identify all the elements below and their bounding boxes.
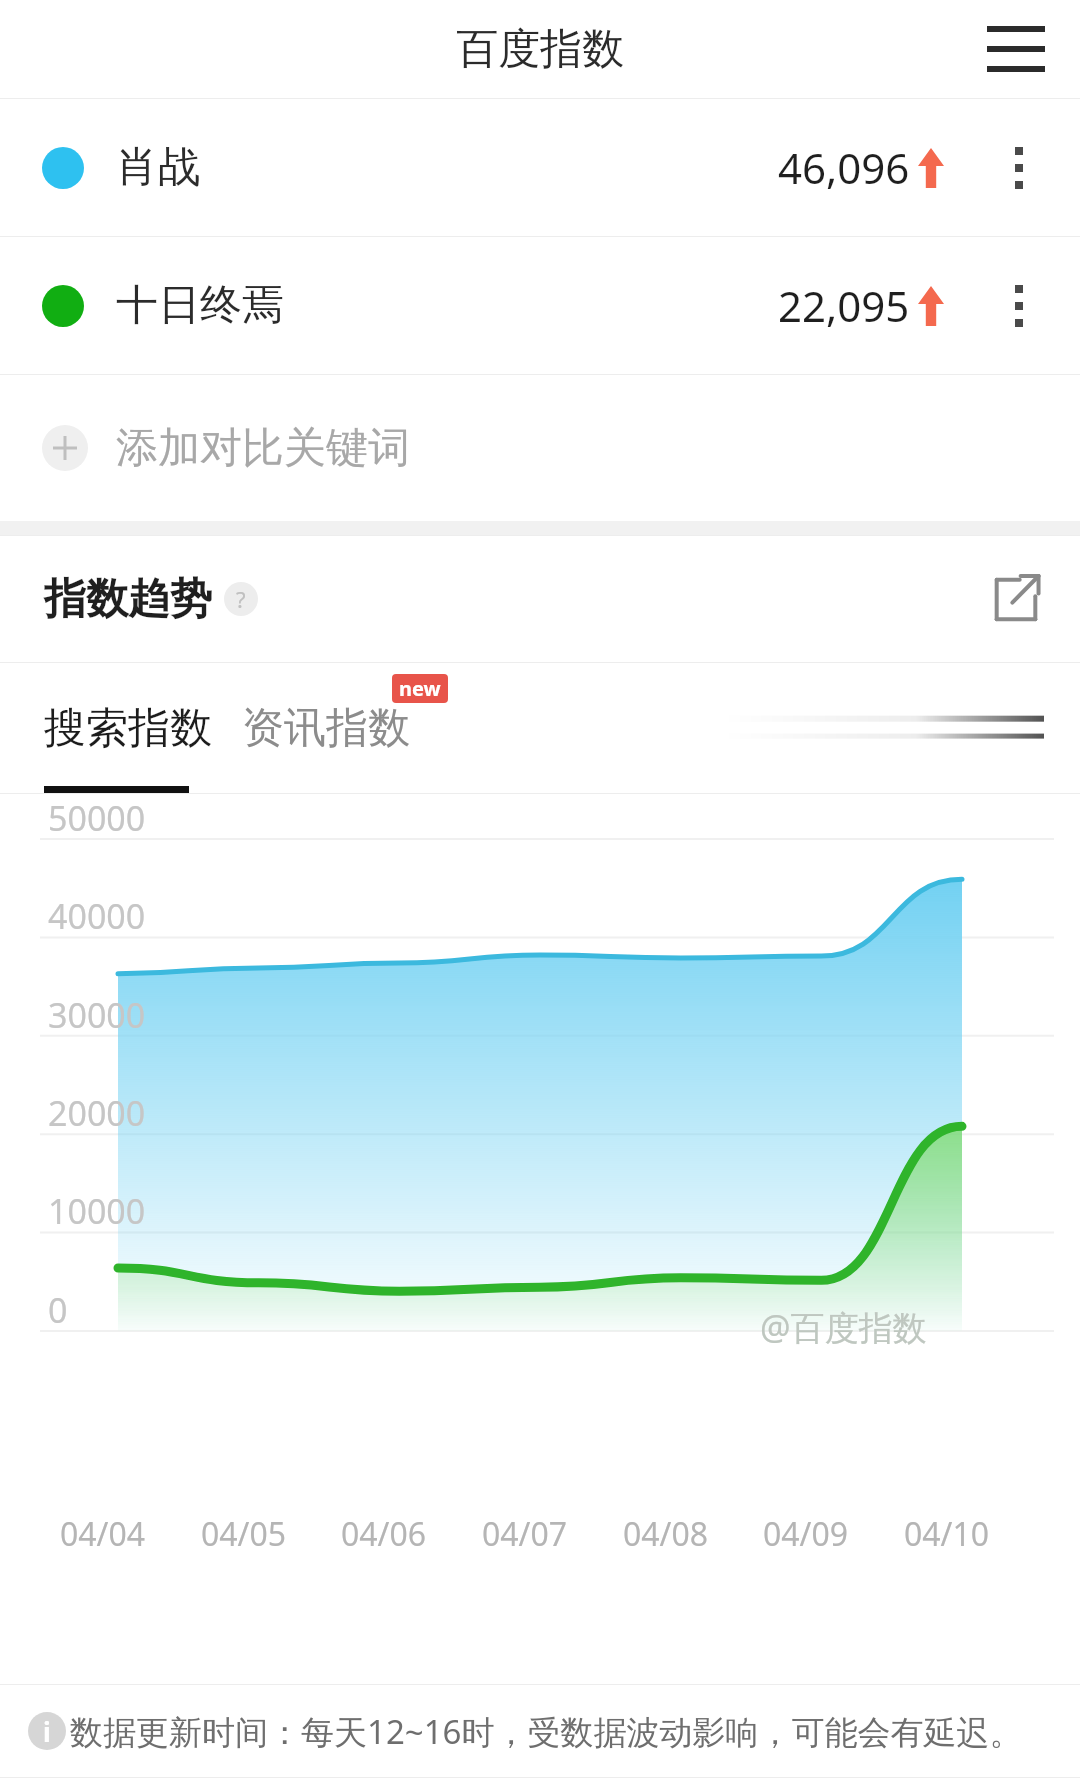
staticText: 04/06 — [341, 1512, 427, 1556]
staticText: 40000 — [48, 893, 146, 939]
button[interactable]: More options — [988, 275, 1050, 337]
button[interactable]: 资讯指数 — [242, 684, 410, 773]
staticText: 50000 — [48, 795, 146, 841]
staticText: 04/04 — [60, 1512, 146, 1556]
button[interactable]: Open full chart — [978, 561, 1054, 637]
staticText: 20000 — [48, 1090, 146, 1136]
staticText: i — [43, 1714, 51, 1749]
staticText: 资讯指数 — [242, 702, 410, 755]
staticText: 04/05 — [201, 1512, 287, 1556]
button[interactable]: More options — [988, 137, 1050, 199]
staticText: 数据更新时间：每天12~16时，受数据波动影响，可能会有延迟。 — [70, 1709, 1023, 1754]
staticText: ? — [236, 584, 246, 614]
staticText: 0 — [48, 1287, 68, 1333]
staticText: 22,095 — [778, 277, 910, 334]
staticText: 04/09 — [763, 1512, 849, 1556]
staticText: new — [399, 675, 441, 702]
button[interactable]: 肖战 — [0, 99, 1080, 236]
button[interactable]: 添加对比关键词 — [0, 375, 1080, 521]
staticText: 04/10 — [904, 1512, 990, 1556]
button[interactable]: Help — [224, 582, 258, 616]
staticText: 十日终焉 — [116, 279, 284, 332]
staticText: 添加对比关键词 — [116, 422, 410, 475]
staticText: 46,096 — [778, 139, 910, 196]
button[interactable]: 搜索指数 — [44, 684, 212, 773]
button[interactable]: 十日终焉 — [0, 237, 1080, 374]
staticText: 搜索指数 — [44, 702, 212, 755]
staticText: 30000 — [48, 992, 146, 1038]
staticText: @百度指数 — [760, 1304, 927, 1350]
staticText: 指数趋势 — [44, 573, 212, 626]
staticText: 04/07 — [482, 1512, 568, 1556]
staticText: 肖战 — [116, 141, 200, 194]
staticText: 04/08 — [623, 1512, 709, 1556]
staticText: 百度指数 — [456, 23, 624, 76]
staticText: 10000 — [48, 1188, 146, 1234]
button[interactable]: Menu — [980, 13, 1052, 85]
